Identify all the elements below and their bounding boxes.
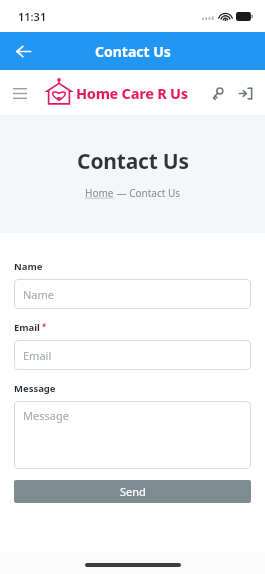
button[interactable]: Message: [14, 401, 251, 469]
staticText: Message: [14, 382, 56, 395]
staticText: *: [40, 321, 47, 332]
staticText: Contact Us: [95, 42, 171, 61]
staticText: 11:31: [18, 9, 47, 24]
staticText: Name: [23, 287, 55, 302]
button[interactable]: Home Care R Us: [44, 78, 188, 108]
button[interactable]: Password: [205, 81, 229, 105]
button[interactable]: Email: [14, 340, 251, 370]
button[interactable]: Menu: [6, 79, 34, 107]
staticText: Message: [23, 408, 69, 423]
staticText: Home Care R Us: [76, 83, 188, 103]
staticText: Name: [14, 260, 43, 273]
staticText: — Contact Us: [114, 186, 181, 200]
button[interactable]: Name: [14, 279, 251, 309]
staticText: Send: [120, 484, 146, 499]
staticText: Email: [23, 348, 52, 363]
button[interactable]: Send: [14, 480, 251, 503]
button[interactable]: Back: [6, 34, 40, 68]
button[interactable]: Home: [85, 186, 114, 200]
button[interactable]: Sign in: [233, 81, 257, 105]
staticText: Contact Us: [77, 147, 189, 176]
staticText: Email: [14, 321, 40, 334]
